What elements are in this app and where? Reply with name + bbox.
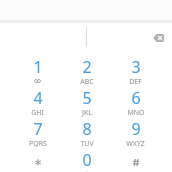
button[interactable]: Star <box>13 150 62 172</box>
button[interactable]: 7 <box>13 119 62 150</box>
staticText: 2 <box>82 56 92 75</box>
staticText: PQRS <box>29 139 47 149</box>
button[interactable]: 1 <box>13 57 62 88</box>
staticText: MNO <box>127 108 145 118</box>
button[interactable]: 8 <box>62 119 111 150</box>
staticText: 8 <box>82 118 92 137</box>
button[interactable]: 2 <box>62 57 111 88</box>
staticText: 0 <box>82 149 92 168</box>
staticText: TUV <box>80 139 94 149</box>
button[interactable]: 9 <box>111 119 160 150</box>
button[interactable]: 3 <box>111 57 160 88</box>
staticText: 3 <box>131 56 141 75</box>
staticText: ABC <box>80 77 94 87</box>
staticText: WXYZ <box>126 139 145 149</box>
staticText: DEF <box>129 77 142 87</box>
button[interactable]: 6 <box>111 88 160 119</box>
button[interactable]: 5 <box>62 88 111 119</box>
staticText: 4 <box>33 87 43 106</box>
button[interactable]: Backspace <box>148 27 169 48</box>
staticText: JKL <box>82 108 92 118</box>
button[interactable]: 0 <box>62 150 111 172</box>
staticText: 5 <box>82 87 92 106</box>
button[interactable]: 4 <box>13 88 62 119</box>
staticText: 6 <box>131 87 141 106</box>
staticText: + <box>84 167 90 172</box>
staticText: 7 <box>33 118 43 137</box>
staticText: 1 <box>33 56 43 75</box>
button[interactable]: Pound <box>111 150 160 172</box>
staticText: 9 <box>131 118 141 137</box>
staticText: GHI <box>31 108 44 118</box>
